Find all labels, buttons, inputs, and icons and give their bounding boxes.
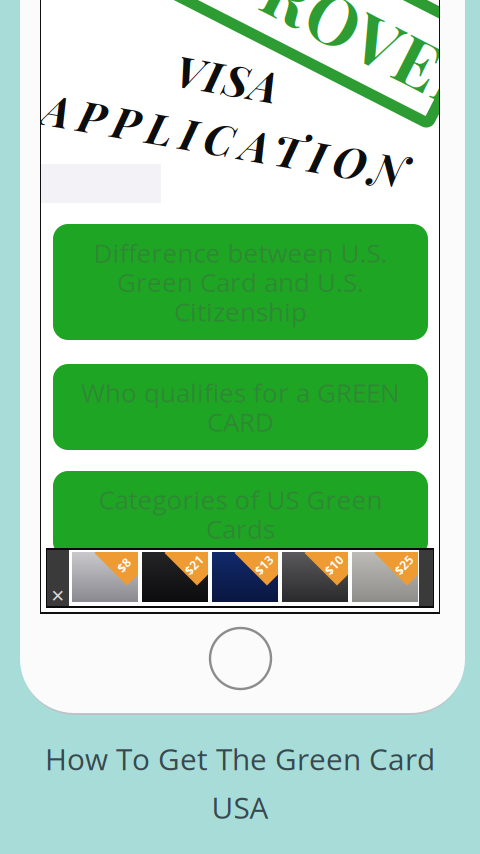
staticText: $21: [183, 557, 204, 573]
staticText: VISA: [169, 50, 273, 107]
button[interactable]: Who qualifies for a GREEN: [53, 364, 428, 450]
button[interactable]: Difference between U.S.: [53, 224, 428, 340]
staticText: Who qualifies for a GREEN: [81, 375, 400, 410]
staticText: How To Get The Green Card: [45, 738, 435, 779]
button[interactable]: Categories of US Green: [53, 471, 428, 557]
staticText: CARD: [207, 404, 274, 439]
staticText: $10: [323, 557, 344, 573]
staticText: $13: [253, 557, 274, 573]
staticText: $8: [117, 557, 131, 573]
staticText: ✕: [50, 586, 65, 606]
staticText: Categories of US Green: [98, 482, 382, 517]
staticText: Green Card and U.S.: [117, 264, 364, 300]
staticText: Citizenship: [174, 294, 307, 329]
staticText: Difference between U.S.: [93, 235, 387, 270]
staticText: USA: [211, 787, 268, 827]
staticText: APPLICATION: [45, 111, 414, 168]
staticText: Cards: [206, 511, 275, 546]
staticText: $25: [393, 557, 414, 573]
staticText: APPROVED: [129, 0, 480, 54]
button[interactable]: ✕: [46, 548, 434, 608]
